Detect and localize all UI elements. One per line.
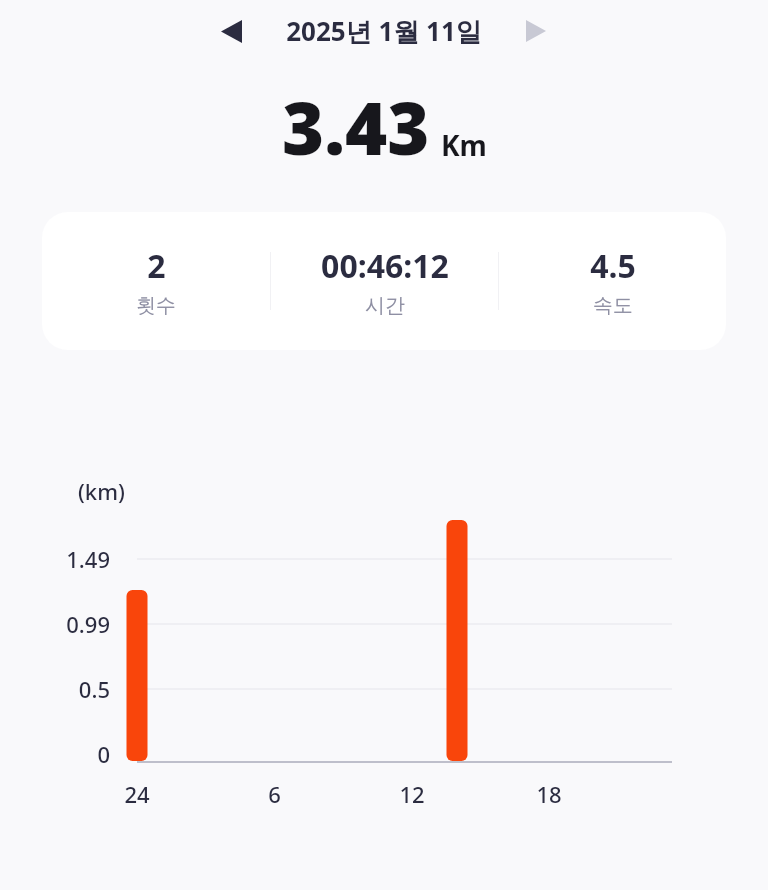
staticText: 12 [399, 779, 425, 809]
button[interactable]: 2025년 1월 11일 [264, 6, 504, 56]
staticText: 0.99 [66, 609, 110, 639]
staticText: 2 [147, 244, 166, 288]
staticText: 3.43 [282, 78, 430, 176]
button[interactable]: Previous day [209, 9, 253, 53]
staticText: 0.5 [78, 674, 110, 704]
staticText: 0 [97, 739, 110, 769]
button[interactable]: Next day [514, 9, 558, 53]
staticText: 횟수 [136, 293, 176, 318]
staticText: 속도 [593, 293, 633, 318]
staticText: (km) [78, 476, 125, 506]
staticText: 4.5 [590, 244, 636, 288]
button[interactable]: 00:46:12 [271, 212, 498, 350]
button[interactable]: 4.5 [499, 212, 726, 350]
staticText: 2025년 1월 11일 [286, 13, 482, 49]
staticText: 시간 [365, 293, 405, 318]
button[interactable]: 2 [42, 212, 270, 350]
staticText: 24 [124, 779, 150, 809]
staticText: 6 [268, 779, 281, 809]
staticText: Km [441, 126, 487, 164]
staticText: 1.49 [66, 544, 110, 574]
staticText: 00:46:12 [321, 244, 449, 288]
staticText: 18 [536, 779, 562, 809]
